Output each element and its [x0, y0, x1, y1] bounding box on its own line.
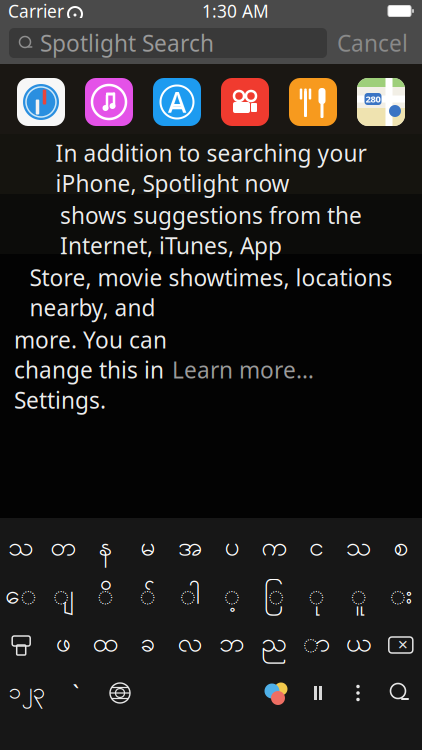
button[interactable]: Numbers: [0, 671, 54, 715]
button[interactable]: Shift: [0, 623, 42, 667]
button[interactable]: ာ: [295, 623, 338, 667]
staticText: 280: [365, 93, 380, 105]
staticText: [62, 0, 68, 26]
staticText: ြ: [264, 578, 285, 616]
button[interactable]: ူ: [338, 575, 380, 619]
staticText: `: [72, 677, 79, 709]
staticText: ာ: [302, 626, 330, 664]
button[interactable]: န: [84, 527, 127, 571]
button[interactable]: ထ: [84, 623, 127, 667]
button[interactable]: Learn more…: [172, 355, 314, 385]
button[interactable]: Emoji: [254, 671, 298, 715]
staticText: shows suggestions from the Internet, iTu…: [60, 200, 362, 260]
button[interactable]: Next keyboard: [98, 671, 142, 715]
button[interactable]: Movies: [221, 78, 269, 126]
button[interactable]: Layout: [298, 671, 338, 715]
staticText: more. You can change this in Settings.: [14, 325, 167, 415]
staticText: ယ: [346, 626, 372, 664]
button[interactable]: App Store: [153, 78, 201, 126]
staticText: ျ: [53, 578, 74, 616]
button[interactable]: Maps: [357, 78, 405, 126]
staticText: Store, movie showtimes, locations nearby…: [29, 262, 392, 323]
button[interactable]: Restaurants: [289, 78, 337, 126]
button[interactable]: ပ: [211, 527, 253, 571]
button[interactable]: Search: [378, 671, 422, 715]
button[interactable]: တ: [42, 527, 84, 571]
button[interactable]: င: [295, 527, 338, 571]
button[interactable]: း: [380, 575, 422, 619]
staticText: ဘ: [219, 626, 245, 664]
staticText: Spotlight Search: [40, 28, 214, 58]
button[interactable]: ု: [295, 575, 338, 619]
button[interactable]: Spotlight Search: [9, 28, 327, 58]
button[interactable]: ယ: [338, 623, 380, 667]
staticText: ✕: [397, 637, 408, 652]
button[interactable]: ခ: [127, 623, 169, 667]
button[interactable]: ဘ: [211, 623, 253, 667]
button[interactable]: Cancel: [327, 26, 418, 60]
staticText: မ: [140, 530, 155, 568]
button[interactable]: iTunes: [85, 78, 133, 126]
button[interactable]: More: [338, 671, 378, 715]
button[interactable]: က: [253, 527, 295, 571]
button[interactable]: ိ: [84, 575, 127, 619]
staticText: ၁၂၃: [8, 677, 45, 709]
staticText: A: [168, 83, 186, 121]
staticText: ိ: [97, 578, 114, 616]
staticText: In addition to searching your iPhone, Sp…: [55, 138, 366, 198]
staticText: ု: [308, 578, 325, 616]
button[interactable]: `: [54, 671, 98, 715]
staticText: 1:30 AM: [202, 0, 269, 22]
button[interactable]: ြ: [253, 575, 295, 619]
button[interactable]: မ: [127, 527, 169, 571]
staticText: Cancel: [337, 28, 408, 58]
staticText: ထ: [92, 626, 118, 664]
staticText: ူ: [350, 578, 367, 616]
staticText: ခ: [140, 626, 155, 664]
staticText: အ: [178, 530, 202, 568]
staticText: ့: [224, 578, 241, 616]
staticText: စ: [393, 530, 408, 568]
button[interactable]: ေ: [0, 575, 42, 619]
staticText: ါ: [179, 578, 200, 616]
button[interactable]: ျ: [42, 575, 84, 619]
staticText: န: [98, 530, 112, 568]
staticText: ေ: [5, 578, 37, 616]
staticText: Learn more…: [172, 355, 314, 385]
button[interactable]: ့: [211, 575, 253, 619]
button[interactable]: သ: [338, 527, 380, 571]
staticText: သ: [8, 530, 34, 568]
button[interactable]: စ: [380, 527, 422, 571]
button[interactable]: လ: [169, 623, 211, 667]
button[interactable]: ါ: [169, 575, 211, 619]
staticText: င: [309, 530, 324, 568]
button[interactable]: သ: [0, 527, 42, 571]
staticText: တ: [50, 530, 76, 568]
staticText: Carrier: [8, 0, 64, 22]
staticText: ဖ: [56, 626, 71, 664]
staticText: က: [261, 530, 287, 568]
staticText: လ: [177, 626, 202, 664]
staticText: း: [389, 578, 412, 616]
button[interactable]: ်: [127, 575, 169, 619]
staticText: ည: [261, 626, 287, 664]
staticText: သ: [346, 530, 372, 568]
staticText: ပ: [225, 530, 240, 568]
button[interactable]: အ: [169, 527, 211, 571]
button[interactable]: Delete: [380, 623, 422, 667]
button[interactable]: Safari: [17, 78, 65, 126]
button[interactable]: ဖ: [42, 623, 84, 667]
button[interactable]: ည: [253, 623, 295, 667]
staticText: ်: [139, 578, 156, 616]
